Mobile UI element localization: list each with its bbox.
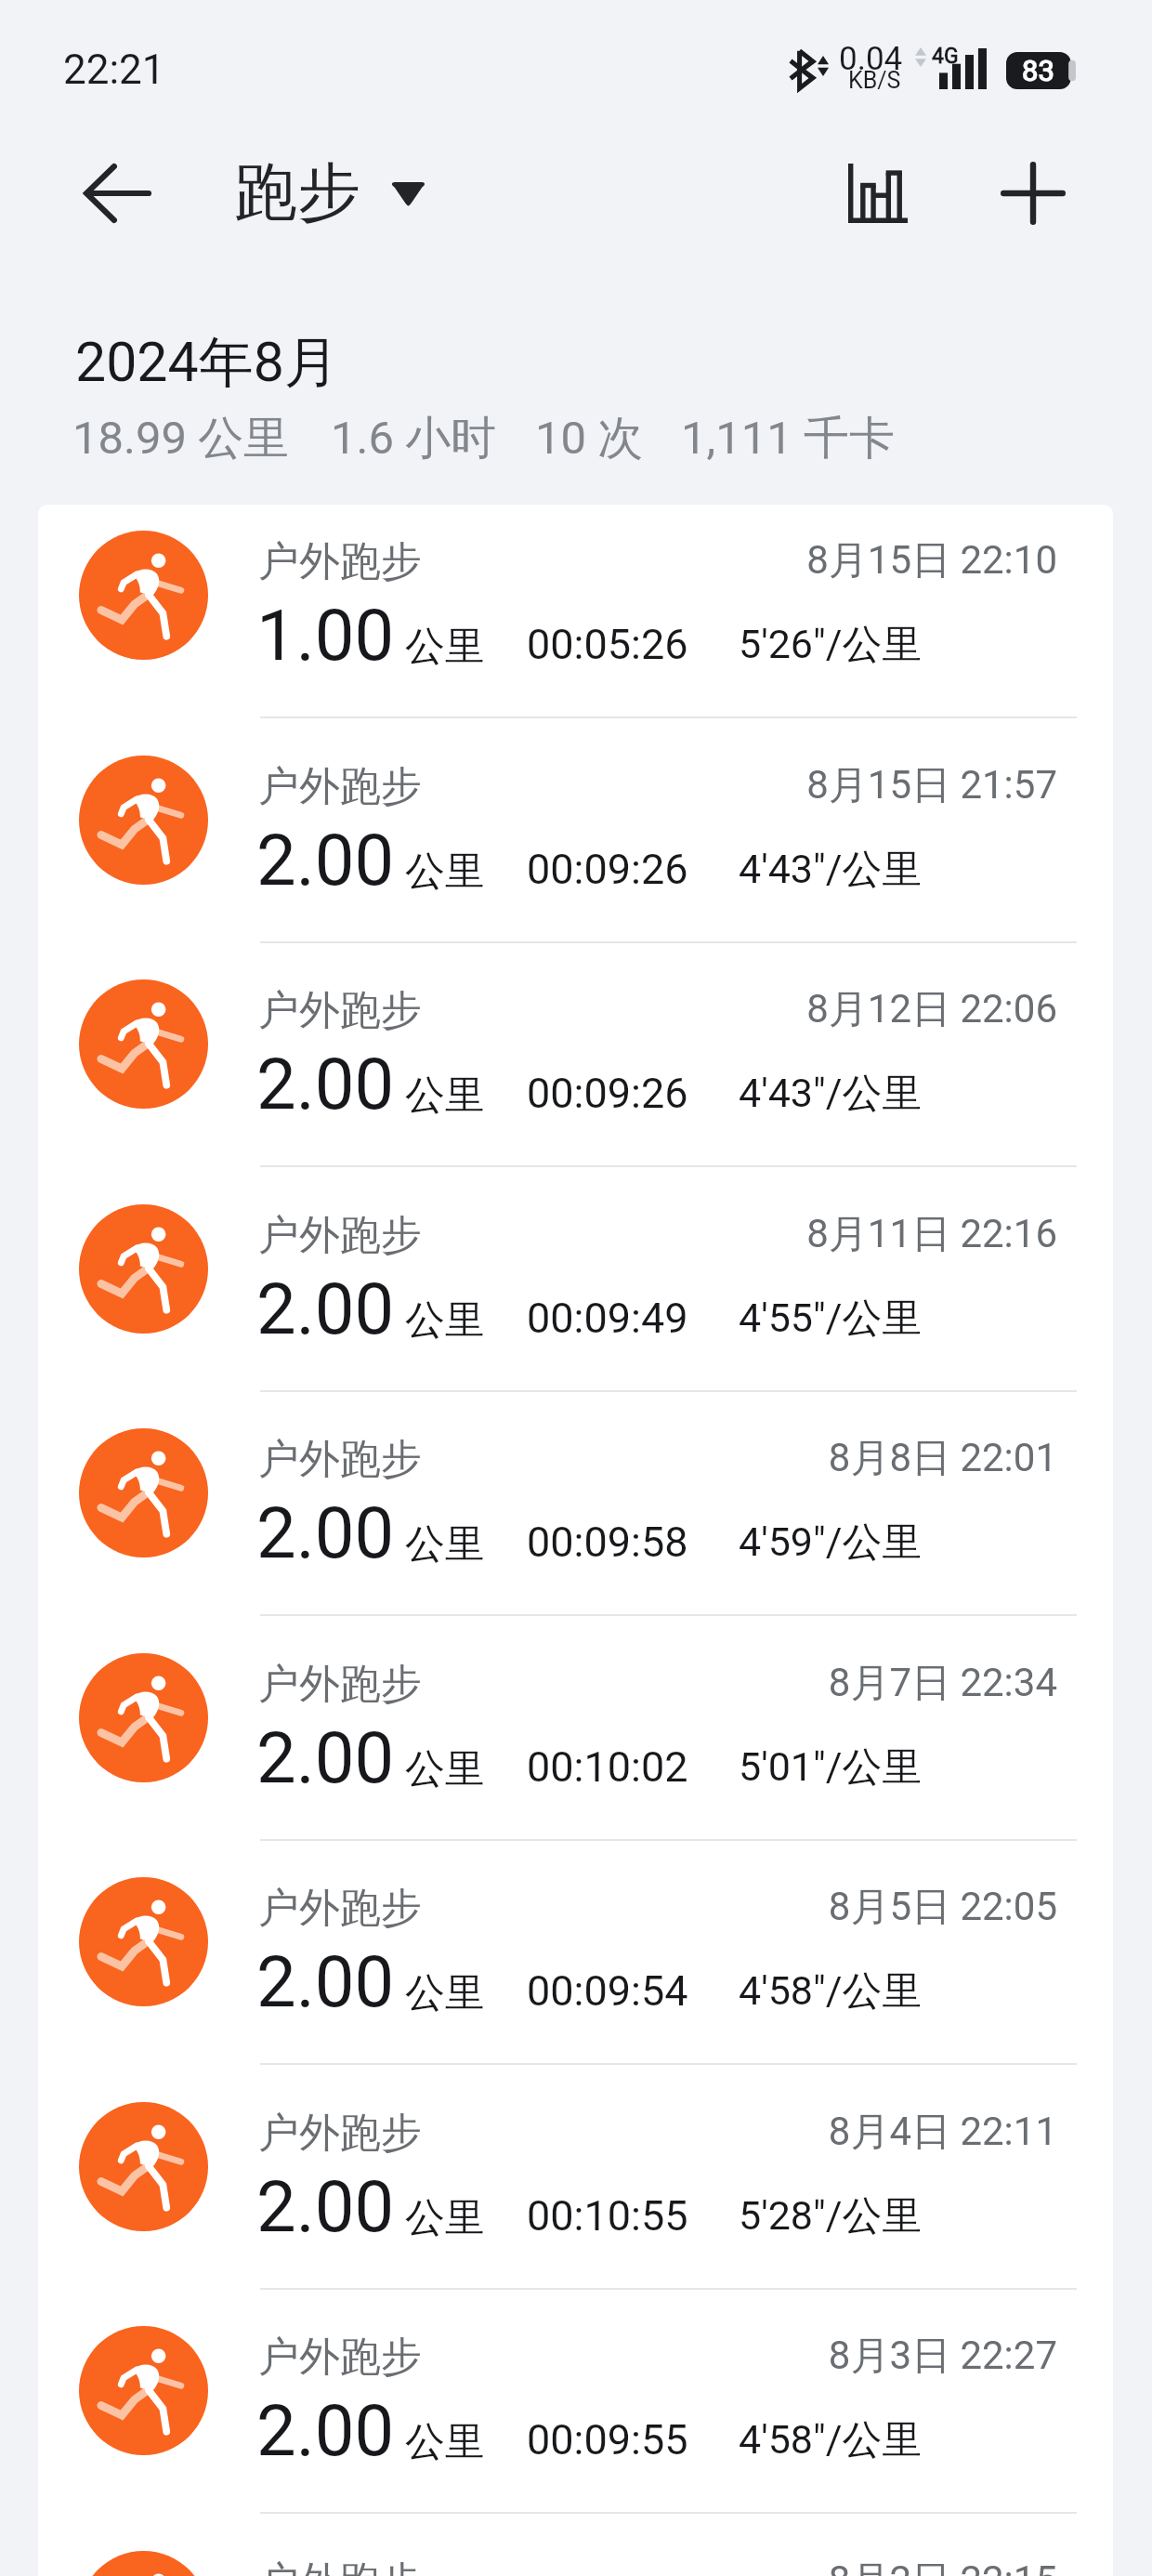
staticText: 8月3日 22:27: [38, 2332, 1057, 2381]
staticText: 2.00: [256, 1268, 395, 1350]
staticText: 00:10:02: [527, 1742, 688, 1792]
staticText: 户外跑步: [258, 761, 422, 812]
staticText: 8月7日 22:34: [38, 1659, 1057, 1708]
staticText: 8月12日 22:06: [38, 985, 1057, 1034]
button[interactable]: 户外跑步: [38, 1402, 1113, 1627]
button[interactable]: 户外跑步: [38, 729, 1113, 954]
staticText: 4'55"/公里: [739, 1294, 923, 1344]
staticText: 00:09:26: [527, 845, 688, 894]
staticText: 8月8日 22:01: [38, 1434, 1057, 1483]
staticText: 0.04: [839, 40, 903, 78]
staticText: 22:21: [63, 46, 165, 94]
staticText: 00:09:26: [527, 1069, 688, 1118]
staticText: 户外跑步: [258, 2332, 422, 2383]
staticText: 户外跑步: [258, 1434, 422, 1485]
button[interactable]: 户外跑步: [38, 2300, 1113, 2525]
staticText: 公里: [405, 1968, 485, 2018]
staticText: 户外跑步: [258, 1210, 422, 1261]
staticText: 公里: [405, 1744, 485, 1794]
staticText: 公里: [405, 1519, 485, 1570]
button[interactable]: 户外跑步: [38, 953, 1113, 1178]
button[interactable]: Statistics: [822, 138, 934, 249]
button[interactable]: Back: [60, 138, 172, 249]
staticText: 户外跑步: [258, 1883, 422, 1934]
staticText: 00:10:55: [527, 2191, 688, 2241]
button[interactable]: 户外跑步: [38, 1627, 1113, 1852]
staticText: 2024年8月: [75, 328, 339, 397]
button[interactable]: 户外跑步: [38, 505, 1113, 729]
staticText: 公里: [405, 1295, 485, 1346]
staticText: 1.6 小时: [331, 410, 497, 467]
staticText: 公里: [405, 1071, 485, 1121]
staticText: 户外跑步: [258, 2108, 422, 2159]
staticText: 8月11日 22:16: [38, 1210, 1057, 1259]
button[interactable]: 户外跑步: [38, 2076, 1113, 2301]
staticText: 10 次: [535, 410, 644, 467]
staticText: 公里: [405, 622, 485, 672]
staticText: 00:05:26: [527, 620, 688, 669]
staticText: 户外跑步: [258, 2556, 422, 2576]
button[interactable]: 户外跑步: [38, 1851, 1113, 2076]
staticText: 2.00: [256, 1716, 395, 1799]
button[interactable]: 跑步: [234, 149, 425, 238]
staticText: 户外跑步: [258, 536, 422, 587]
staticText: KB/S: [848, 67, 901, 94]
staticText: 4'43"/公里: [739, 845, 923, 895]
staticText: 2.00: [256, 2389, 395, 2472]
staticText: 5'28"/公里: [739, 2191, 923, 2241]
staticText: 跑步: [234, 153, 360, 233]
staticText: 00:09:58: [527, 1518, 688, 1567]
staticText: 公里: [405, 2193, 485, 2243]
button[interactable]: 户外跑步: [38, 1178, 1113, 1403]
staticText: 00:09:54: [527, 1966, 688, 2016]
button[interactable]: Add: [977, 138, 1089, 249]
staticText: 8月4日 22:11: [38, 2108, 1057, 2157]
staticText: 2.00: [256, 1940, 395, 2023]
staticText: 公里: [405, 847, 485, 897]
staticText: 1.00: [256, 594, 395, 677]
staticText: 18.99 公里: [72, 410, 290, 467]
staticText: 2.00: [256, 819, 395, 901]
staticText: 2.00: [256, 1492, 395, 1574]
staticText: 83: [1022, 54, 1054, 87]
staticText: 4'58"/公里: [739, 2415, 923, 2465]
staticText: 4'59"/公里: [739, 1518, 923, 1568]
staticText: 2.00: [256, 2165, 395, 2248]
staticText: 5'01"/公里: [739, 1742, 923, 1793]
staticText: 8月5日 22:05: [38, 1883, 1057, 1932]
staticText: 2.00: [256, 1043, 395, 1125]
staticText: 8月15日 21:57: [38, 761, 1057, 810]
staticText: 00:09:55: [527, 2415, 688, 2464]
staticText: 8月2日 22:15: [38, 2556, 1057, 2576]
staticText: 4G: [932, 44, 959, 69]
staticText: 5'26"/公里: [739, 620, 923, 670]
staticText: 1,111 千卡: [681, 410, 895, 467]
staticText: 4'43"/公里: [739, 1069, 923, 1119]
staticText: 8月15日 22:10: [38, 536, 1057, 585]
staticText: 户外跑步: [258, 985, 422, 1036]
staticText: 00:09:49: [527, 1294, 688, 1343]
staticText: 公里: [405, 2417, 485, 2467]
staticText: 户外跑步: [258, 1659, 422, 1710]
button[interactable]: 户外跑步: [38, 2525, 1113, 2576]
staticText: 4'58"/公里: [739, 1966, 923, 2017]
